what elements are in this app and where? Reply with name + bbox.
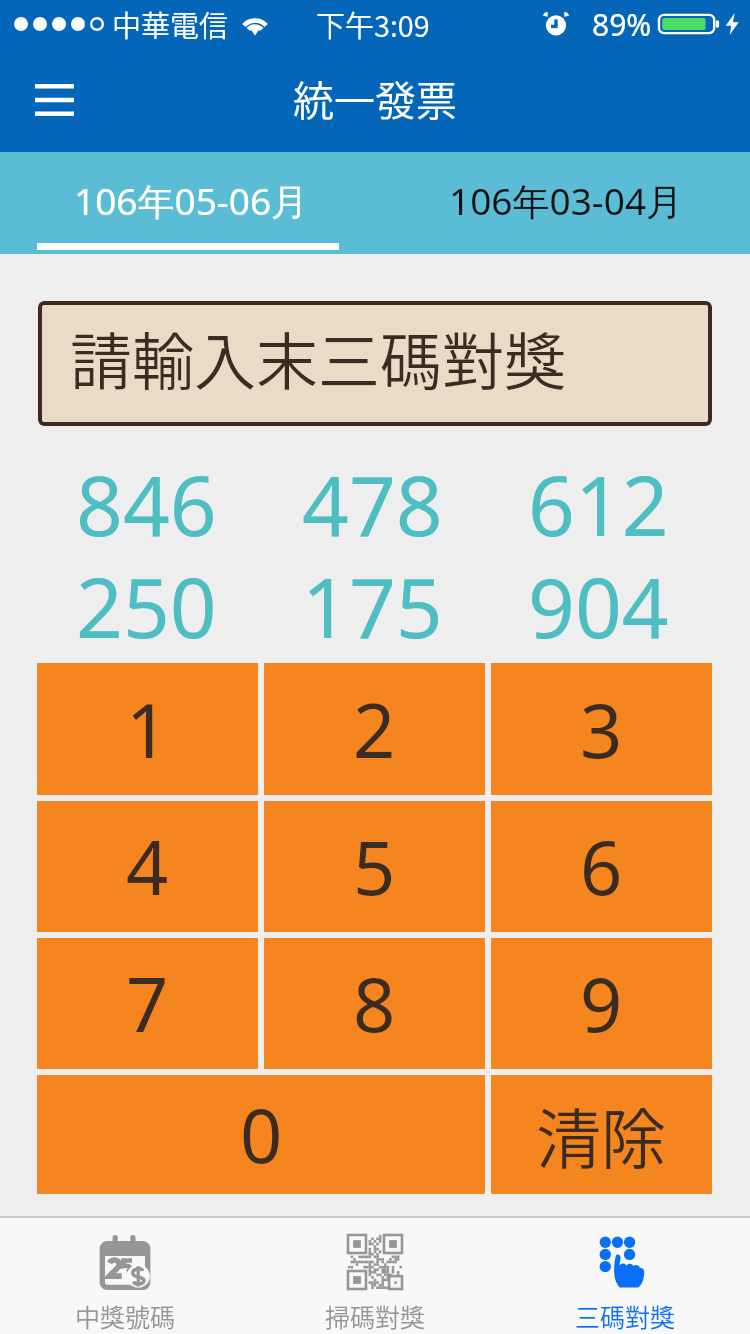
staticText: 478 — [302, 448, 443, 548]
staticText: 6 — [580, 816, 623, 917]
staticText: 請輸入末三碼對獎 — [70, 313, 567, 403]
button[interactable]: 1 — [37, 663, 258, 795]
staticText: 中獎號碼 — [75, 1298, 176, 1334]
button[interactable]: 6 — [491, 801, 712, 932]
staticText: 清除 — [536, 1088, 667, 1182]
staticText: 中華電信 — [112, 3, 229, 45]
button[interactable]: 掃碼對獎 — [250, 1218, 500, 1334]
staticText: 三碼對獎 — [575, 1298, 676, 1334]
button[interactable]: 5 — [264, 801, 485, 932]
staticText: 2 — [353, 679, 396, 780]
button[interactable]: 2 — [264, 663, 485, 795]
button[interactable]: 0 — [37, 1075, 485, 1194]
staticText: 4 — [126, 816, 169, 917]
button[interactable]: 8 — [264, 938, 485, 1069]
staticText: 1 — [126, 679, 169, 780]
staticText: 250 — [76, 550, 217, 650]
button[interactable]: 中獎號碼 — [0, 1218, 250, 1334]
staticText: 846 — [76, 448, 217, 548]
button[interactable]: Menu — [22, 68, 86, 132]
staticText: 5 — [353, 816, 396, 917]
staticText: 7 — [126, 953, 169, 1054]
staticText: 8 — [353, 953, 396, 1054]
staticText: 106年03-04月 — [449, 175, 684, 226]
staticText: 掃碼對獎 — [325, 1298, 426, 1334]
staticText: 612 — [528, 448, 669, 548]
button[interactable]: 三碼對獎 — [500, 1218, 750, 1334]
staticText: 904 — [528, 550, 669, 650]
staticText: 0 — [240, 1084, 283, 1185]
button[interactable]: 3 — [491, 663, 712, 795]
button[interactable]: 清除 — [491, 1075, 712, 1194]
button[interactable]: 9 — [491, 938, 712, 1069]
staticText: 175 — [302, 550, 443, 650]
button[interactable]: 7 — [37, 938, 258, 1069]
button[interactable]: 4 — [37, 801, 258, 932]
staticText: 3 — [580, 679, 623, 780]
staticText: 統一發票 — [293, 68, 457, 127]
staticText: 9 — [580, 953, 623, 1054]
staticText: 89% — [592, 4, 652, 45]
staticText: 106年05-06月 — [74, 175, 309, 226]
staticText: 下午3:09 — [316, 3, 430, 45]
button[interactable]: 106年03-04月 — [409, 152, 711, 254]
button[interactable]: 請輸入末三碼對獎 — [38, 301, 712, 426]
button[interactable]: 106年05-06月 — [37, 152, 339, 254]
